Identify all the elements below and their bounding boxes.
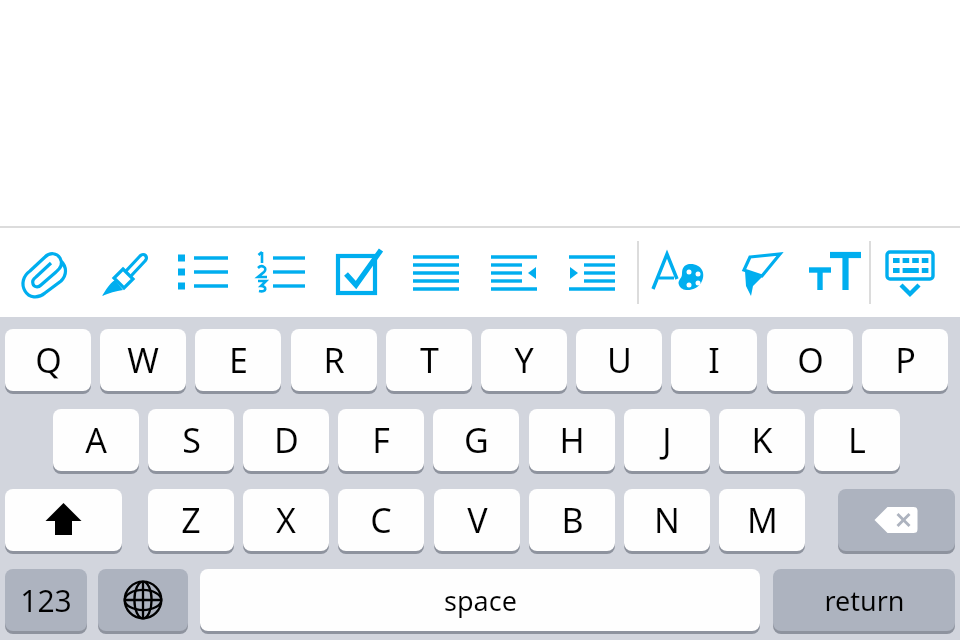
button[interactable]: K	[719, 409, 805, 471]
button[interactable]: Increase indent	[561, 241, 623, 303]
button[interactable]: Draw	[93, 241, 155, 303]
button[interactable]: Hide keyboard	[879, 241, 941, 303]
staticText: A	[85, 417, 107, 463]
staticText: L	[848, 417, 866, 463]
staticText: D	[274, 417, 299, 463]
staticText: R	[323, 337, 345, 383]
button[interactable]: L	[814, 409, 900, 471]
button[interactable]: U	[576, 329, 662, 391]
button[interactable]: M	[719, 489, 805, 551]
staticText: J	[662, 417, 672, 463]
staticText: B	[561, 497, 584, 543]
button[interactable]: O	[767, 329, 853, 391]
staticText: return	[824, 582, 905, 619]
staticText: Y	[514, 337, 534, 383]
button[interactable]: Q	[5, 329, 91, 391]
button[interactable]: S	[148, 409, 234, 471]
button[interactable]: Change keyboard	[98, 569, 188, 631]
staticText: N	[654, 497, 680, 543]
button[interactable]: N	[624, 489, 710, 551]
staticText: E	[229, 337, 248, 383]
button[interactable]: D	[243, 409, 329, 471]
staticText: U	[607, 337, 632, 383]
button[interactable]: C	[338, 489, 424, 551]
button[interactable]: Text colour	[648, 241, 710, 303]
button[interactable]: I	[671, 329, 757, 391]
staticText: S	[182, 417, 201, 463]
button[interactable]: 123	[5, 569, 87, 631]
staticText: F	[372, 417, 390, 463]
button[interactable]: Numbered list	[249, 241, 311, 303]
button[interactable]: Bulleted list	[172, 241, 234, 303]
button[interactable]: B	[529, 489, 615, 551]
staticText: M	[747, 497, 778, 543]
staticText: W	[127, 337, 159, 383]
button[interactable]: Text size	[804, 241, 866, 303]
button[interactable]: F	[338, 409, 424, 471]
button[interactable]: V	[434, 489, 520, 551]
button[interactable]: Highlighter	[729, 241, 791, 303]
staticText: K	[751, 417, 773, 463]
button[interactable]: Backspace	[838, 489, 955, 551]
button[interactable]: Justify text	[405, 241, 467, 303]
button[interactable]: W	[100, 329, 186, 391]
button[interactable]: T	[386, 329, 472, 391]
staticText: P	[895, 337, 916, 383]
button[interactable]: X	[243, 489, 329, 551]
button[interactable]: G	[433, 409, 519, 471]
button[interactable]: J	[624, 409, 710, 471]
staticText: O	[797, 337, 824, 383]
button[interactable]: P	[862, 329, 948, 391]
button[interactable]: space	[200, 569, 760, 631]
staticText: Q	[35, 337, 62, 383]
staticText: Z	[181, 497, 201, 543]
button[interactable]: R	[291, 329, 377, 391]
button[interactable]: H	[529, 409, 615, 471]
button[interactable]: Z	[148, 489, 234, 551]
button[interactable]: Shift	[5, 489, 122, 551]
button[interactable]: A	[53, 409, 139, 471]
button[interactable]: Attach	[17, 241, 79, 303]
staticText: G	[464, 417, 489, 463]
staticText: C	[370, 497, 392, 543]
button[interactable]: Y	[481, 329, 567, 391]
button[interactable]: Decrease indent	[483, 241, 545, 303]
staticText: H	[559, 417, 585, 463]
staticText: 123	[20, 580, 72, 621]
button[interactable]: return	[773, 569, 955, 631]
staticText: space	[444, 582, 517, 619]
button[interactable]: Checklist	[328, 241, 390, 303]
staticText: T	[420, 337, 439, 383]
staticText: I	[708, 337, 720, 383]
staticText: X	[276, 497, 296, 543]
staticText: V	[467, 497, 488, 543]
button[interactable]: E	[195, 329, 281, 391]
